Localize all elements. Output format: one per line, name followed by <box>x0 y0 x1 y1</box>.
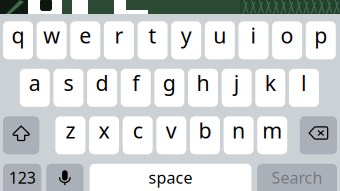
button[interactable]: h <box>188 69 218 107</box>
staticText: j <box>234 68 240 97</box>
button[interactable]: v <box>156 116 186 154</box>
staticText: y <box>181 21 192 49</box>
staticText: e <box>79 21 91 49</box>
button[interactable]: w <box>37 21 67 59</box>
button[interactable]: space <box>90 164 251 191</box>
staticText: p <box>314 21 327 49</box>
button[interactable]: j <box>222 69 252 107</box>
button[interactable]: d <box>87 69 117 107</box>
staticText: z <box>65 116 75 144</box>
button[interactable]: f <box>121 69 151 107</box>
staticText: 123 <box>9 167 36 188</box>
button[interactable]: g <box>154 69 184 107</box>
button[interactable]: 123 <box>3 164 41 191</box>
button[interactable]: r <box>104 21 134 59</box>
button[interactable]: c <box>123 116 153 154</box>
button[interactable]: n <box>224 116 254 154</box>
button[interactable]: x <box>89 116 119 154</box>
staticText: v <box>166 116 177 144</box>
staticText: b <box>198 116 211 144</box>
staticText: i <box>250 21 256 49</box>
button[interactable]: Shift <box>3 116 39 154</box>
staticText: d <box>96 68 109 97</box>
button[interactable]: y <box>171 21 201 59</box>
button[interactable]: i <box>238 21 268 59</box>
staticText: o <box>281 21 294 49</box>
button[interactable]: Delete <box>300 116 337 154</box>
staticText: x <box>98 116 109 144</box>
button[interactable]: o <box>272 21 302 59</box>
button[interactable]: a <box>20 69 50 107</box>
staticText: a <box>29 68 41 97</box>
staticText: q <box>11 21 24 49</box>
staticText: m <box>262 116 282 144</box>
button[interactable]: p <box>306 21 336 59</box>
staticText: g <box>163 68 176 97</box>
button[interactable]: t <box>138 21 168 59</box>
button[interactable]: k <box>255 69 285 107</box>
staticText: f <box>132 68 139 97</box>
button[interactable]: m <box>257 116 287 154</box>
button[interactable]: Search <box>257 164 337 191</box>
staticText: space <box>149 167 193 188</box>
staticText: w <box>43 21 60 49</box>
staticText: k <box>265 68 276 97</box>
staticText: l <box>301 68 307 97</box>
staticText: s <box>63 68 73 97</box>
button[interactable]: s <box>53 69 83 107</box>
staticText: n <box>232 116 245 144</box>
staticText: Search <box>272 167 323 188</box>
staticText: u <box>213 21 226 49</box>
staticText: h <box>196 68 209 97</box>
button[interactable]: q <box>3 21 33 59</box>
button[interactable]: u <box>205 21 235 59</box>
staticText: r <box>114 21 123 49</box>
staticText: t <box>149 21 157 49</box>
button[interactable]: e <box>70 21 100 59</box>
staticText: c <box>133 116 143 144</box>
button[interactable]: l <box>289 69 319 107</box>
button[interactable]: Dictate <box>46 164 83 191</box>
button[interactable]: z <box>55 116 85 154</box>
button[interactable]: b <box>190 116 220 154</box>
